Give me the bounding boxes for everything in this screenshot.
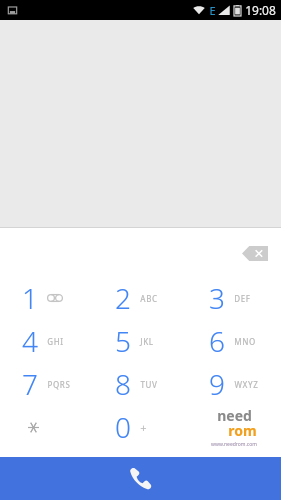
staticText: ABC bbox=[140, 293, 158, 304]
button[interactable]: 1 bbox=[0, 276, 93, 319]
button[interactable]: 8 bbox=[93, 362, 187, 405]
staticText: DEF bbox=[234, 293, 251, 304]
button[interactable]: Backspace bbox=[237, 242, 273, 264]
button[interactable]: 3 bbox=[187, 276, 281, 319]
button[interactable]: 0 bbox=[93, 405, 187, 448]
staticText: 2 bbox=[115, 279, 131, 317]
staticText: 7 bbox=[22, 365, 38, 403]
staticText: www.needrom.com bbox=[211, 441, 257, 446]
staticText: MNO bbox=[234, 336, 256, 347]
staticText: rom bbox=[228, 421, 257, 440]
staticText: 5 bbox=[115, 322, 131, 360]
staticText: E bbox=[209, 3, 216, 18]
staticText: TUV bbox=[140, 379, 158, 390]
button[interactable]: 2 bbox=[93, 276, 187, 319]
staticText: 1 bbox=[22, 279, 38, 317]
button[interactable]: 6 bbox=[187, 319, 281, 362]
staticText: GHI bbox=[47, 336, 64, 347]
button[interactable] bbox=[0, 405, 93, 448]
staticText: 4 bbox=[22, 322, 38, 360]
button[interactable]: 4 bbox=[0, 319, 93, 362]
staticText: 3 bbox=[209, 279, 225, 317]
staticText: JKL bbox=[140, 336, 154, 347]
staticText: 0 bbox=[115, 408, 131, 446]
staticText: PQRS bbox=[47, 379, 71, 390]
button[interactable]: 9 bbox=[187, 362, 281, 405]
button[interactable]: need bbox=[187, 405, 281, 448]
staticText: 8 bbox=[115, 365, 131, 403]
staticText: WXYZ bbox=[234, 379, 259, 390]
staticText: need bbox=[217, 406, 252, 425]
staticText: + bbox=[140, 420, 147, 435]
button[interactable]: 5 bbox=[93, 319, 187, 362]
staticText: 9 bbox=[209, 365, 225, 403]
button[interactable]: 7 bbox=[0, 362, 93, 405]
staticText: 19:08 bbox=[245, 2, 276, 18]
staticText: 6 bbox=[209, 322, 225, 360]
button[interactable]: Call bbox=[95, 457, 185, 500]
